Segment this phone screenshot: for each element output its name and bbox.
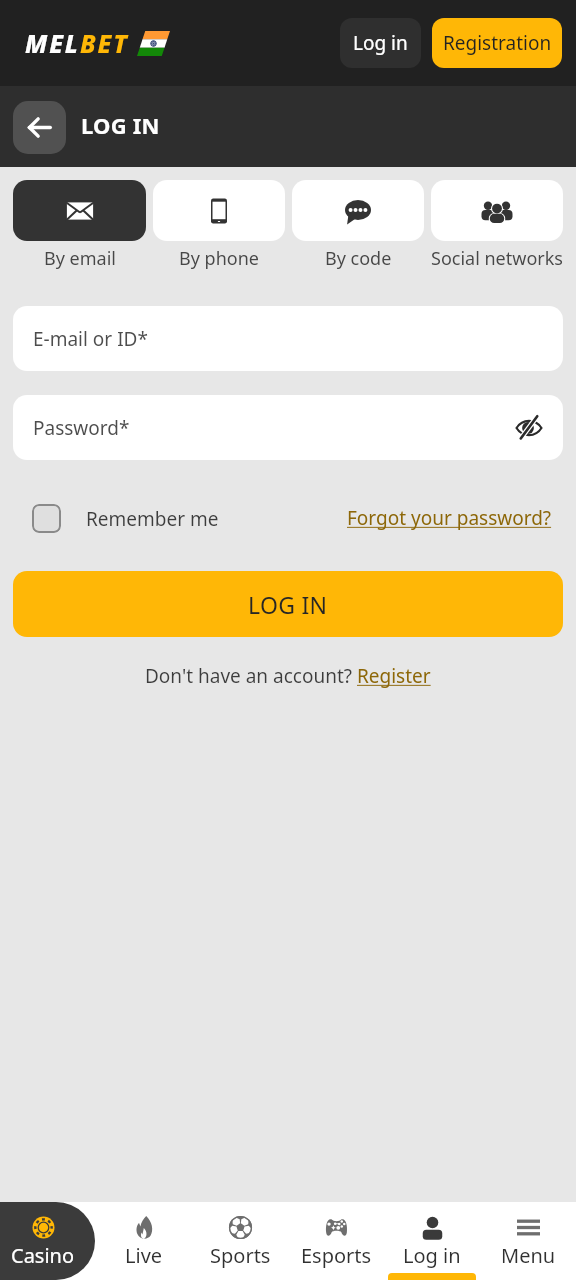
staticText: Sports [210,1242,271,1269]
staticText: Menu [501,1242,556,1269]
button[interactable]: LOG IN [13,571,563,637]
staticText: By phone [179,246,259,271]
button[interactable] [0,1202,95,1280]
button[interactable]: E-mail or ID* [13,306,563,371]
staticText: Don't have an account? [145,663,357,689]
staticText: Password* [33,415,130,441]
button[interactable]: Registration [432,18,562,68]
button[interactable]: Back [13,101,66,154]
staticText: Log in [403,1242,461,1269]
staticText: BET [80,26,129,60]
button[interactable]: Menu [480,1202,576,1280]
button[interactable]: Remember me [18,500,227,537]
staticText: By email [44,246,116,271]
button[interactable]: Show password [509,408,549,448]
staticText: LOG IN [248,589,328,620]
staticText: Casino [11,1242,75,1269]
staticText: LOG IN [81,110,160,140]
staticText: Forgot your password? [347,505,552,531]
button[interactable]: Sports [192,1202,288,1280]
button[interactable]: Register [357,663,431,689]
button[interactable]: By code [292,180,424,271]
button[interactable]: Live [95,1202,192,1280]
staticText: Remember me [86,506,219,532]
staticText: By code [325,246,392,271]
button[interactable]: Password* [13,395,563,460]
button[interactable]: Esports [288,1202,384,1280]
button[interactable]: Log in [384,1202,480,1280]
button[interactable]: Social networks [431,180,563,271]
button[interactable]: Log in [340,18,421,68]
staticText: Log in [353,30,408,56]
button[interactable]: Forgot your password? [343,501,556,535]
staticText: Social networks [431,246,563,271]
staticText: Esports [301,1242,372,1269]
button[interactable]: By phone [153,180,285,271]
staticText: MEL [25,26,80,60]
staticText: Registration [443,30,552,56]
staticText: E-mail or ID* [33,326,148,352]
staticText: Register [357,663,431,689]
button[interactable]: By email [13,180,146,271]
staticText: Live [125,1242,163,1269]
